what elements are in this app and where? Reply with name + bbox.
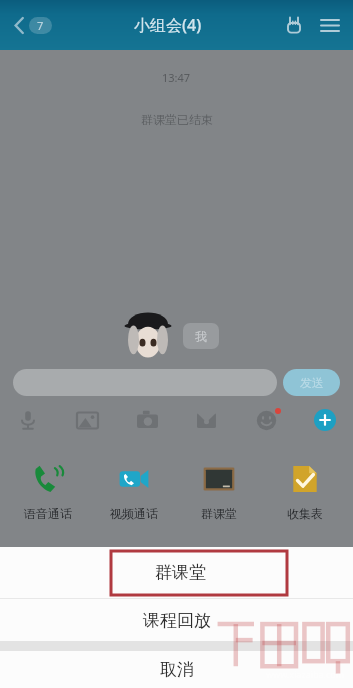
staticText: 收集表 <box>287 506 323 521</box>
staticText: 13:47 <box>162 70 191 85</box>
staticText: 群课堂 <box>155 562 206 583</box>
button[interactable]: Camera <box>130 403 164 437</box>
button[interactable]: Gallery <box>70 403 104 437</box>
button[interactable]: 课程回放 <box>0 599 353 641</box>
button[interactable]: 群课堂 <box>182 462 256 521</box>
staticText: 课程回放 <box>143 610 211 631</box>
button[interactable]: 群课堂 <box>0 547 353 598</box>
button[interactable]: Menu <box>317 12 343 38</box>
button[interactable]: Group card <box>279 10 309 40</box>
button[interactable]: More <box>308 403 342 437</box>
button[interactable]: 发送 <box>283 369 340 396</box>
button[interactable]: Red packet <box>189 403 223 437</box>
button[interactable]: 语音通话 <box>11 462 85 521</box>
button[interactable]: 取消 <box>0 651 353 688</box>
button[interactable]: 视频通话 <box>97 462 171 521</box>
staticText: 视频通话 <box>110 506 158 521</box>
staticText: 语音通话 <box>24 506 72 521</box>
button[interactable]: Message input <box>13 369 277 396</box>
button[interactable]: Voice message <box>11 403 45 437</box>
staticText: 7 <box>37 18 44 33</box>
staticText: 群课堂已结束 <box>141 112 213 127</box>
button[interactable]: 收集表 <box>268 462 342 521</box>
button[interactable]: Emoji <box>249 403 283 437</box>
staticText: 取消 <box>160 659 194 680</box>
staticText: 群课堂 <box>201 506 237 521</box>
staticText: 发送 <box>300 375 324 390</box>
staticText: www.xiazaiba.com <box>266 668 345 680</box>
staticText: 我 <box>195 329 207 344</box>
button[interactable]: Back, 7 unread <box>8 9 58 42</box>
staticText: 小组会(4) <box>134 14 202 36</box>
